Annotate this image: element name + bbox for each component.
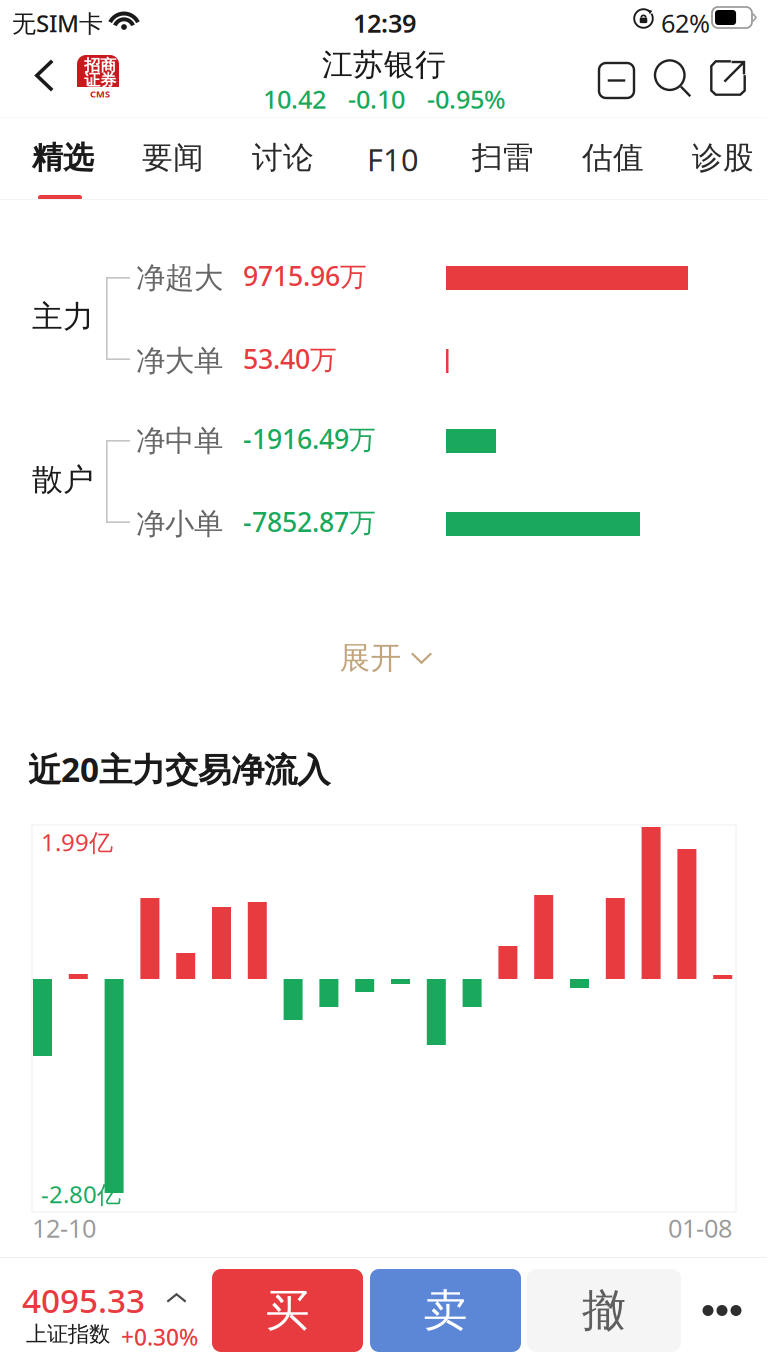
button[interactable]: 诊股 — [668, 121, 768, 201]
staticText: 撤 — [582, 1283, 626, 1337]
staticText: 扫雷 — [472, 139, 534, 177]
staticText: -0.95% — [427, 82, 506, 116]
staticText: 估值 — [582, 139, 644, 177]
staticText: -0.10 — [348, 82, 405, 116]
staticText: 散户 — [32, 461, 94, 499]
staticText: 展开 — [339, 639, 401, 677]
staticText: 招商 — [84, 56, 116, 75]
staticText: 净中单 — [136, 423, 223, 459]
staticText: 10.42 — [263, 82, 326, 116]
staticText: 诊股 — [692, 139, 754, 177]
staticText: 近20主力交易净流入 — [28, 747, 330, 791]
staticText: 12:39 — [353, 6, 416, 40]
staticText: 证券 — [84, 70, 116, 90]
button[interactable]: 更多 — [685, 1269, 759, 1352]
staticText: -1916.49万 — [243, 421, 376, 456]
staticText: 62% — [661, 6, 710, 40]
button[interactable]: 搜索 — [648, 53, 698, 104]
button[interactable]: 精选 — [8, 121, 118, 201]
button[interactable]: 招商证券 — [77, 55, 119, 96]
staticText: 9715.96万 — [243, 258, 367, 293]
staticText: -2.80亿 — [41, 1178, 121, 1210]
staticText: 卖 — [423, 1283, 467, 1337]
staticText: 12-10 — [32, 1211, 96, 1245]
button[interactable]: 估值 — [558, 121, 668, 201]
button[interactable]: 买 — [212, 1269, 363, 1352]
button[interactable]: 讨论 — [228, 121, 338, 201]
button[interactable]: 扫雷 — [448, 121, 558, 201]
staticText: +0.30% — [121, 1322, 198, 1352]
staticText: 要闻 — [142, 139, 204, 177]
staticText: 4095.33 — [22, 1278, 145, 1322]
staticText: 01-08 — [668, 1211, 732, 1245]
staticText: 1.99亿 — [41, 826, 113, 858]
staticText: 江苏银行 — [322, 46, 446, 84]
button[interactable]: 要闻 — [118, 121, 228, 201]
staticText: 净小单 — [136, 506, 223, 542]
button[interactable]: 分享 — [703, 53, 753, 103]
staticText: 精选 — [32, 139, 94, 177]
button[interactable]: 自选 — [592, 56, 641, 105]
staticText: CMS — [90, 88, 110, 100]
staticText: 无SIM卡 — [12, 7, 103, 39]
staticText: -7852.87万 — [243, 504, 376, 539]
staticText: 上证指数 — [26, 1321, 110, 1347]
staticText: 主力 — [32, 298, 94, 336]
staticText: F10 — [367, 139, 419, 180]
button[interactable]: F10 — [338, 121, 448, 201]
staticText: 净超大 — [136, 260, 223, 296]
button[interactable]: 返回 — [13, 45, 76, 106]
staticText: 53.40万 — [243, 341, 337, 376]
button[interactable]: 卖 — [370, 1269, 521, 1352]
staticText: 讨论 — [252, 139, 314, 177]
staticText: 买 — [265, 1283, 309, 1337]
button[interactable]: 4095.33 — [9, 1265, 393, 1357]
button[interactable]: 撤 — [527, 1269, 681, 1352]
staticText: 净大单 — [136, 343, 223, 379]
button[interactable]: 展开 — [2, 633, 768, 683]
